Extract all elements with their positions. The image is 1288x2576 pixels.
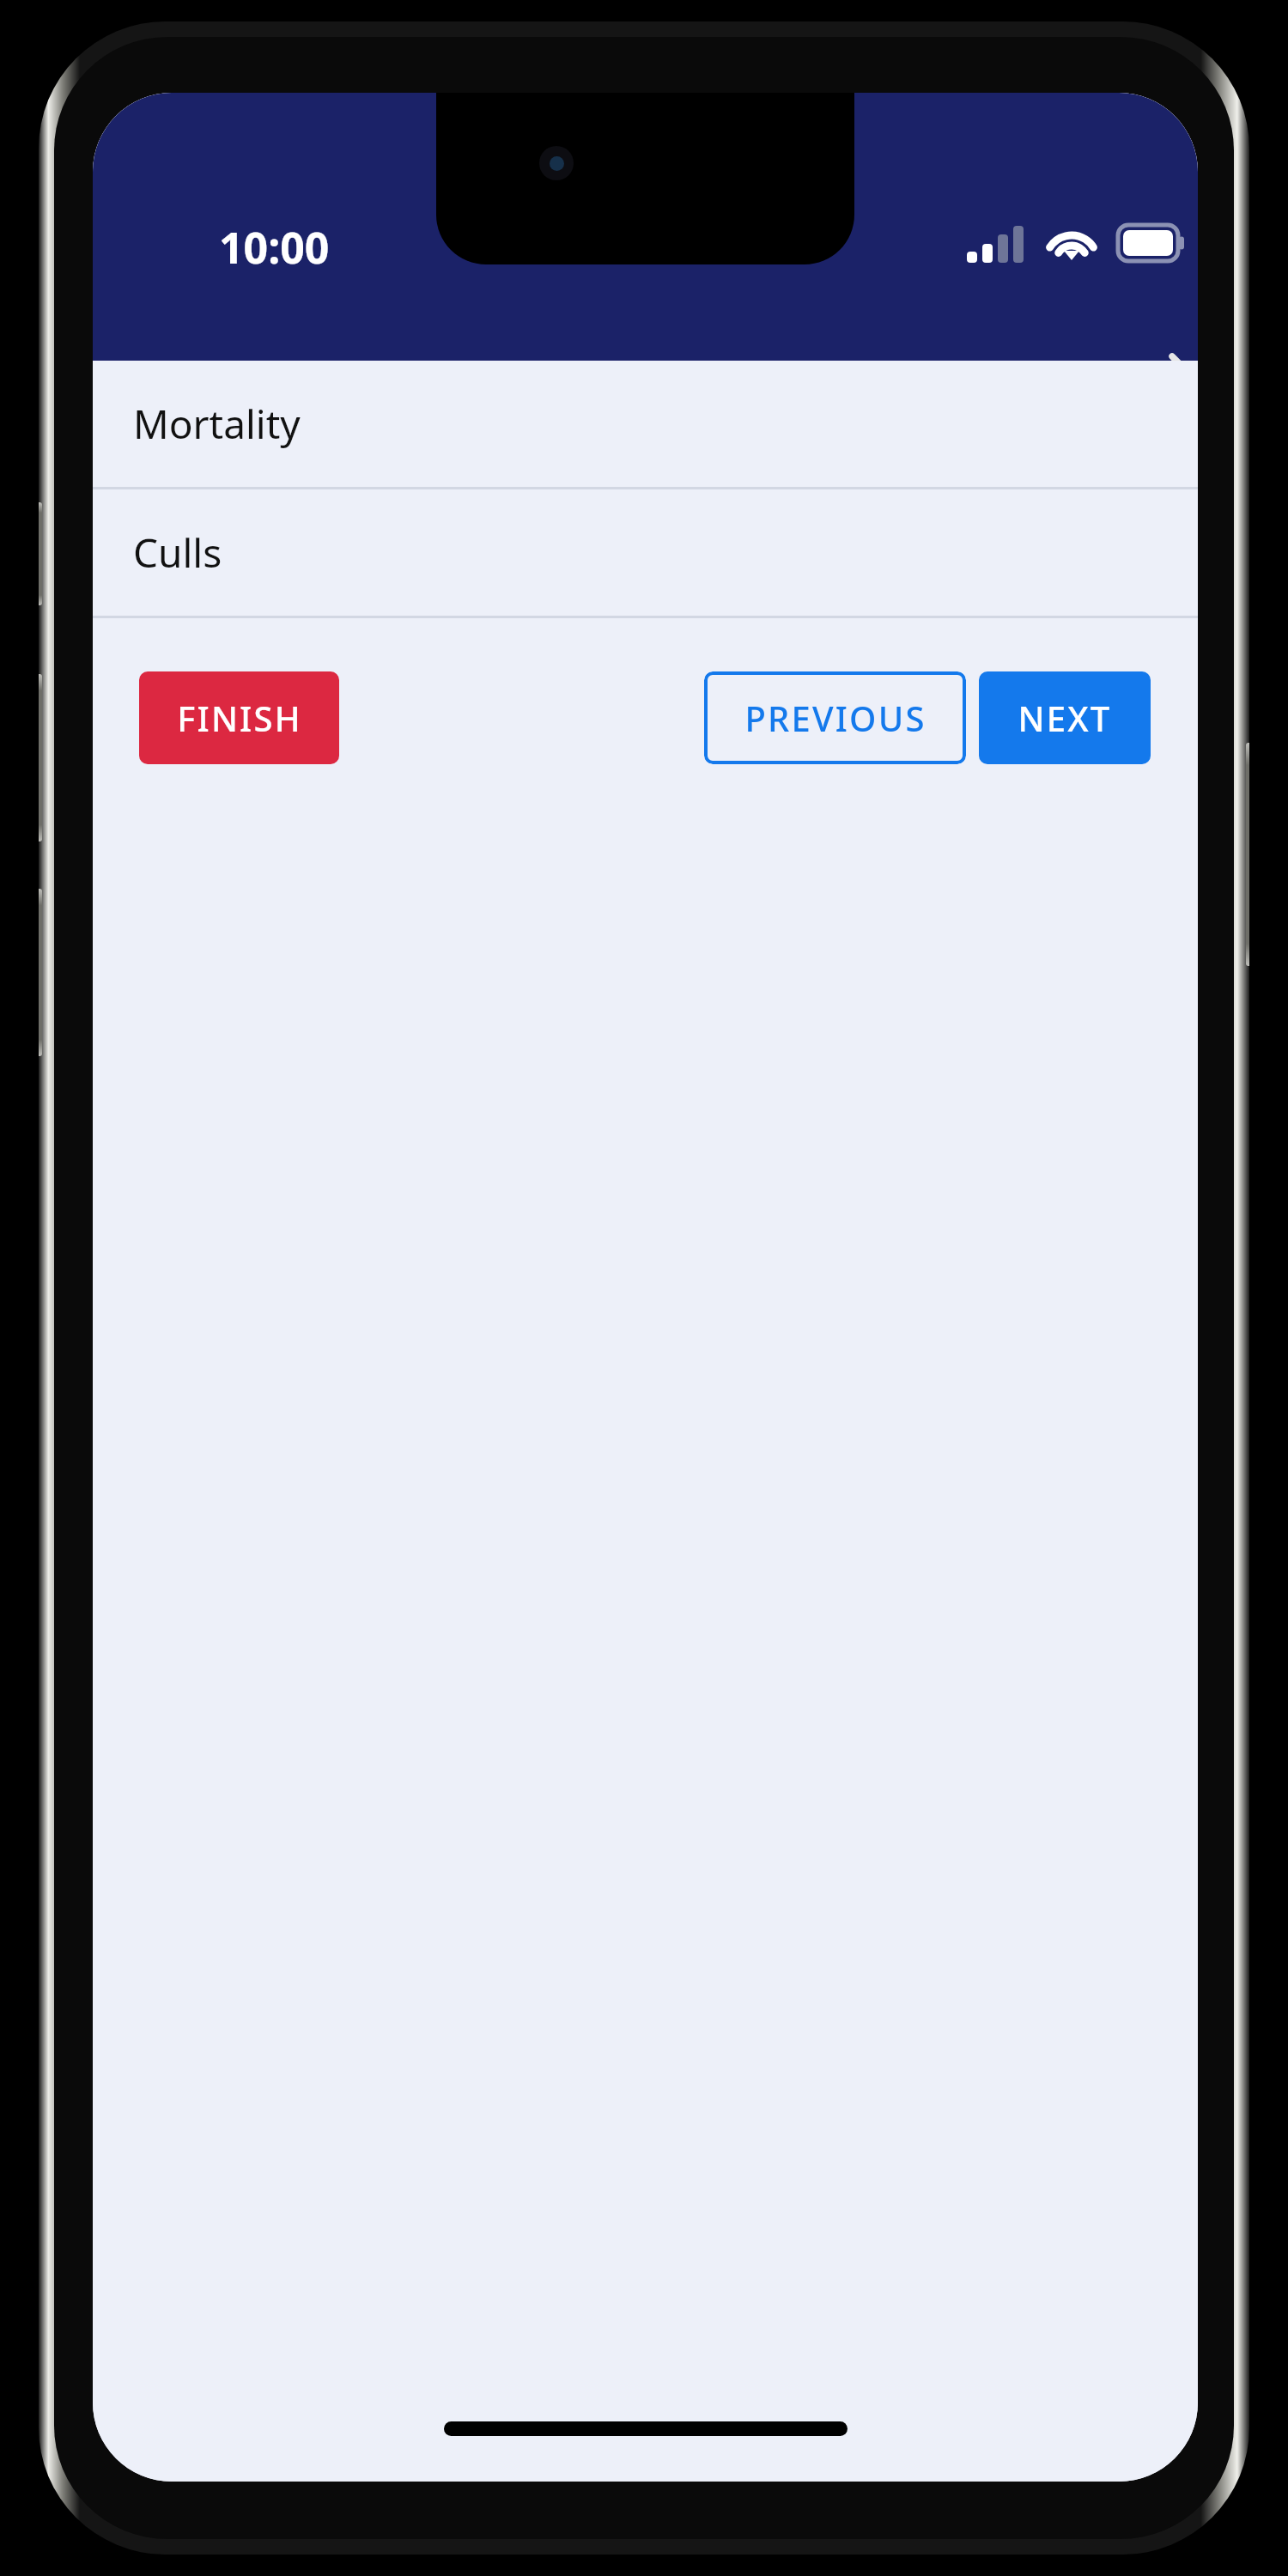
button[interactable]: Close <box>1149 333 1198 428</box>
staticText: FINISH <box>177 695 302 741</box>
button[interactable]: Mortality <box>93 361 1198 487</box>
staticText: 10:00 <box>219 218 330 276</box>
staticText: PREVIOUS <box>744 695 927 741</box>
staticText: NEXT <box>1018 695 1112 741</box>
staticText: Culls <box>133 526 222 580</box>
staticText: House 02 <box>236 350 443 412</box>
button[interactable]: NEXT <box>979 671 1151 764</box>
button[interactable]: FINISH <box>139 671 339 764</box>
button[interactable]: PREVIOUS <box>704 671 966 764</box>
button[interactable]: Culls <box>93 489 1198 616</box>
staticText: Mortality <box>133 397 301 451</box>
